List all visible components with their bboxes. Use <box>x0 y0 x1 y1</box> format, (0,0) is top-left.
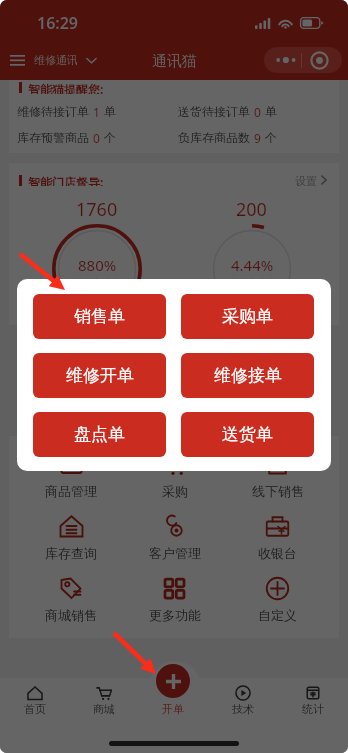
button[interactable]: 维修开单 <box>33 353 166 398</box>
button[interactable]: 收银台 <box>226 506 329 568</box>
button[interactable]: 设置 <box>295 174 327 186</box>
staticText: 采购 <box>162 483 188 499</box>
staticText: 4.44% <box>231 255 274 275</box>
button[interactable]: 商城 <box>69 678 138 753</box>
staticText: 个 <box>104 130 116 143</box>
button[interactable]: 负库存商品数 <box>178 130 339 143</box>
staticText: 销售单 <box>74 306 125 327</box>
staticText: 送货单 <box>222 424 273 445</box>
staticText: 库存查询 <box>45 545 97 561</box>
staticText: 业绩完成率 <box>75 277 120 288</box>
staticText: 自定义 <box>258 607 297 623</box>
staticText: 通讯猫 <box>152 52 197 71</box>
staticText: 库存预警商品 <box>17 130 89 143</box>
staticText: 采购单 <box>222 306 273 327</box>
button[interactable]: 送货待接订单 <box>178 104 339 117</box>
button[interactable]: 首页 <box>0 678 69 753</box>
staticText: 盘点单 <box>74 424 125 445</box>
button[interactable]: 维修接单 <box>181 353 314 398</box>
button[interactable]: 盘点单 <box>33 412 166 457</box>
staticText: 开单 <box>162 702 184 716</box>
staticText: 智能猫提醒您: <box>28 81 104 94</box>
staticText: 更多功能 <box>149 607 201 623</box>
button[interactable]: 送货单 <box>181 412 314 457</box>
staticText: 客户管理 <box>149 545 201 561</box>
staticText: 16:29 <box>37 12 79 34</box>
staticText: 1760 <box>76 197 118 222</box>
button[interactable]: 销售单 <box>33 294 166 339</box>
staticText: 维修开单 <box>66 365 134 386</box>
button[interactable]: 统计 <box>278 678 348 753</box>
staticText: 统计 <box>302 702 324 716</box>
staticText: 智能门店督导: <box>28 174 104 186</box>
staticText: 200 <box>236 197 267 222</box>
staticText: 1 <box>93 104 100 117</box>
button[interactable]: 更多功能 <box>123 568 226 630</box>
staticText: 0 <box>93 130 100 143</box>
button[interactable]: 库存预警商品 <box>17 130 178 143</box>
button[interactable]: 商品管理 <box>19 444 123 506</box>
button[interactable]: 客户管理 <box>123 506 226 568</box>
staticText: 负库存商品数 <box>178 130 250 143</box>
staticText: 单 <box>104 104 116 117</box>
button[interactable]: 技术 <box>208 678 278 753</box>
staticText: 880% <box>78 255 117 275</box>
button[interactable]: 采购 <box>123 444 226 506</box>
button[interactable]: More options <box>264 47 342 73</box>
staticText: 9 <box>254 130 261 143</box>
staticText: 商城 <box>93 702 115 716</box>
staticText: 线下销售 <box>252 483 304 499</box>
button[interactable]: 维修待接订单 <box>17 104 178 117</box>
button[interactable]: 商城销售 <box>19 568 123 630</box>
button[interactable]: 开单 <box>138 678 208 753</box>
button[interactable]: 自定义 <box>226 568 329 630</box>
staticText: 首页 <box>24 702 46 716</box>
staticText: 送货待接订单 <box>178 104 250 117</box>
staticText: 商品管理 <box>45 483 97 499</box>
staticText: 业绩完成率 <box>230 277 275 288</box>
staticText: 维修待接订单 <box>17 104 89 117</box>
staticText: 个 <box>265 130 277 143</box>
staticText: 维修通讯 <box>34 53 78 67</box>
button[interactable]: 采购单 <box>181 294 314 339</box>
staticText: 单 <box>265 104 277 117</box>
staticText: 技术 <box>232 702 254 716</box>
staticText: 设置 <box>295 174 317 186</box>
button[interactable]: 线下销售 <box>226 444 329 506</box>
button[interactable]: 库存查询 <box>19 506 123 568</box>
staticText: 收银台 <box>258 545 297 561</box>
staticText: 维修接单 <box>214 365 282 386</box>
button[interactable]: 维修通讯 <box>10 47 97 73</box>
staticText: 0 <box>254 104 261 117</box>
staticText: 商城销售 <box>45 607 97 623</box>
